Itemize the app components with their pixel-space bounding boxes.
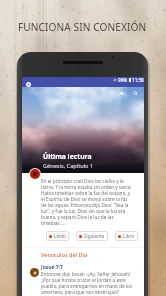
button[interactable]: Share [116,88,127,99]
button[interactable]: Menu [24,80,32,88]
button[interactable]: Leído [46,231,69,241]
staticText: Versículos del Día [41,251,88,259]
staticText: Entonces dijo Josué: –¡Ay, Señor Jehovah… [41,271,136,295]
staticText: En el principio creó Dios los cielos y l… [41,178,132,226]
staticText: Última lectura [43,152,92,161]
staticText: Leído [54,233,66,239]
staticText: 11:38 [132,77,144,83]
staticText: FUNCIONA SIN CONEXIÓN [18,20,147,34]
staticText: Libro [123,233,135,239]
button[interactable]: Search [130,88,141,99]
staticText: 96% [118,77,128,83]
button[interactable]: Siguiente [76,231,108,241]
button[interactable]: Libro [115,231,138,241]
staticText: Siguiente [84,233,105,239]
staticText: Josué 7:7 [41,264,63,271]
staticText: Génesis, Capítulo 1 [43,162,94,170]
